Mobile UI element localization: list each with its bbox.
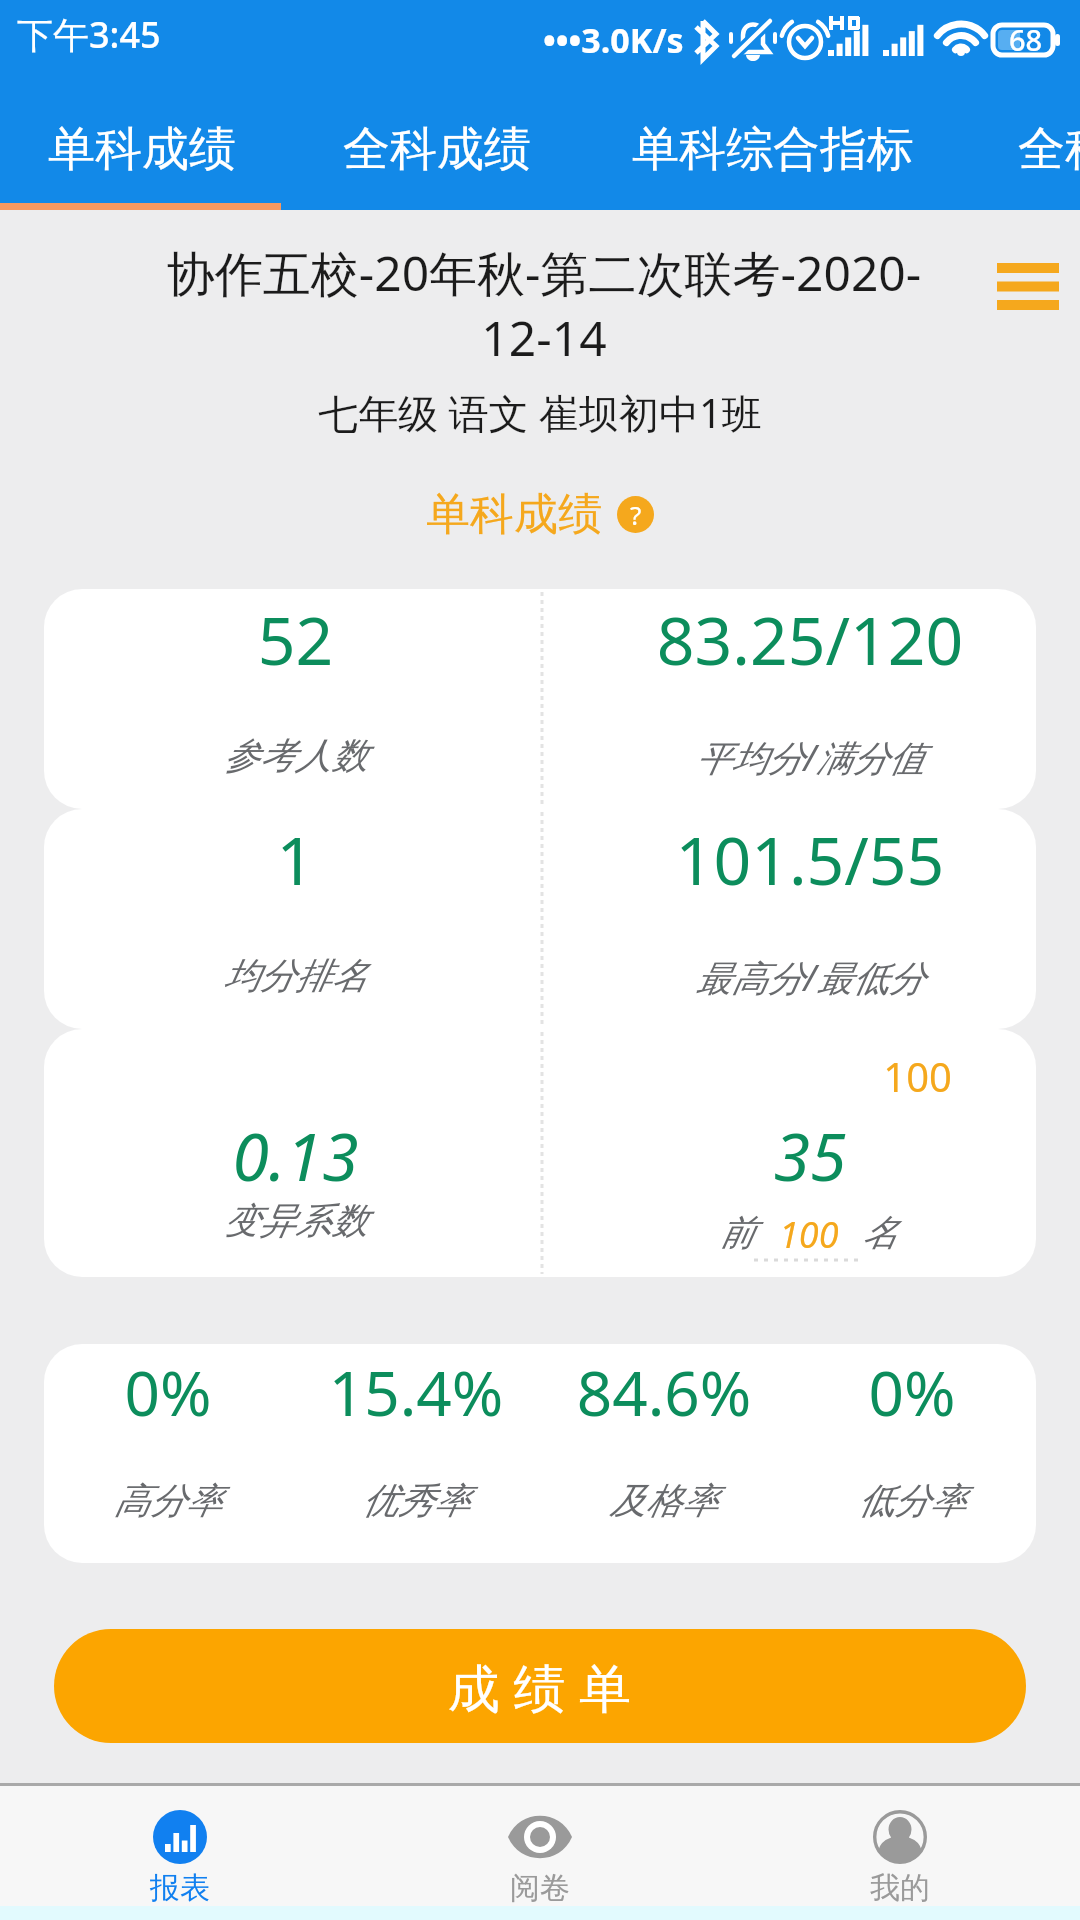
staticText: 83.25/120 <box>563 594 1057 684</box>
staticText: 100 <box>662 1049 952 1103</box>
staticText: 变异系数 <box>44 1198 547 1243</box>
staticText: 全科综合指标 <box>1018 120 1080 179</box>
staticText: 0.13 <box>44 1110 547 1200</box>
button[interactable]: 阅卷 <box>360 1786 720 1920</box>
button[interactable]: 单科综合指标 <box>590 87 956 211</box>
button[interactable]: Menu <box>965 240 1080 332</box>
staticText: 15.4% <box>292 1350 540 1434</box>
staticText: •••3.0K/s <box>543 17 684 63</box>
staticText: 52 <box>44 594 547 684</box>
staticText: 最高分/最低分 <box>563 953 1057 1002</box>
staticText: 成 绩 单 <box>448 1651 632 1722</box>
staticText: 及格率 <box>540 1478 788 1523</box>
staticText: 名 <box>862 1210 898 1255</box>
staticText: 前 <box>719 1210 755 1255</box>
staticText: 我的 <box>870 1869 930 1907</box>
staticText: 100 <box>779 1210 839 1259</box>
button[interactable]: Help <box>617 496 654 533</box>
staticText: 低分率 <box>788 1478 1036 1523</box>
staticText: 单科成绩 <box>426 487 602 542</box>
staticText: 七年级 语文 崔坝初中1班 <box>0 385 1080 440</box>
staticText: 0% <box>44 1350 292 1434</box>
staticText: 高分率 <box>44 1478 292 1523</box>
staticText: 全科成绩 <box>343 120 531 179</box>
staticText: 84.6% <box>540 1350 788 1434</box>
staticText: 1 <box>44 814 547 904</box>
button[interactable]: 报表 <box>0 1786 360 1920</box>
staticText: 平均分/满分值 <box>563 733 1057 782</box>
staticText: 优秀率 <box>292 1478 540 1523</box>
staticText: 0% <box>788 1350 1036 1434</box>
staticText: 68 <box>1009 20 1043 59</box>
staticText: 参考人数 <box>44 733 547 778</box>
staticText: 报表 <box>150 1869 210 1907</box>
button[interactable]: 全科综合指标 <box>1018 87 1080 211</box>
staticText: 单科成绩 <box>48 120 236 179</box>
button[interactable]: 单科成绩 <box>0 87 284 211</box>
staticText: 101.5/55 <box>563 814 1057 904</box>
staticText: 35 <box>563 1110 1057 1200</box>
staticText: 协作五校-20年秋-第二次联考-2020- 12-14 <box>134 240 954 370</box>
button[interactable]: 成 绩 单 <box>54 1629 1026 1743</box>
staticText: 下午3:45 <box>17 10 161 59</box>
button[interactable]: 全科成绩 <box>284 87 590 211</box>
staticText: ? <box>630 497 642 532</box>
staticText: 均分排名 <box>44 953 547 998</box>
staticText: 单科综合指标 <box>632 120 914 179</box>
button[interactable]: 我的 <box>720 1786 1080 1920</box>
staticText: 阅卷 <box>510 1869 570 1907</box>
